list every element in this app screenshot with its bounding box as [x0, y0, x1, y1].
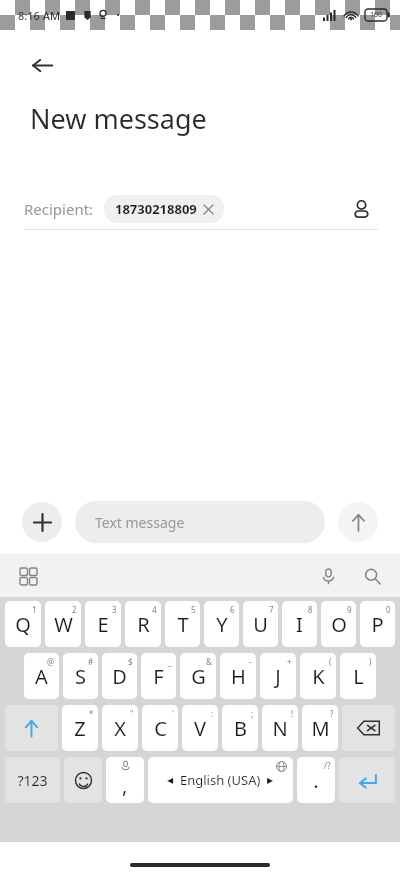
- staticText: ): [369, 656, 372, 667]
- staticText: 7: [269, 604, 274, 615]
- button[interactable]: Comma: [106, 757, 144, 803]
- staticText: I: [296, 611, 303, 638]
- button[interactable]: H: [220, 653, 256, 699]
- staticText: 3: [112, 604, 117, 615]
- staticText: W: [54, 611, 73, 638]
- staticText: (: [329, 656, 332, 667]
- button[interactable]: Send: [338, 502, 378, 542]
- staticText: 6: [230, 604, 235, 615]
- button[interactable]: T: [165, 601, 200, 647]
- staticText: X: [114, 715, 126, 742]
- staticText: Recipient:: [24, 199, 94, 219]
- staticText: Q: [15, 611, 31, 638]
- staticText: C: [154, 715, 167, 742]
- button[interactable]: Keyboard layouts: [12, 560, 44, 592]
- button[interactable]: Space: [148, 757, 293, 803]
- button[interactable]: J: [260, 653, 296, 699]
- button[interactable]: Z: [62, 705, 98, 751]
- staticText: ◀: [167, 776, 174, 785]
- button[interactable]: B: [222, 705, 258, 751]
- staticText: !: [291, 708, 294, 719]
- button[interactable]: Text message: [75, 501, 325, 543]
- staticText: Z: [74, 715, 86, 742]
- staticText: N: [272, 715, 288, 742]
- button[interactable]: I: [282, 601, 317, 647]
- button[interactable]: A: [24, 653, 59, 699]
- staticText: 8: [308, 604, 313, 615]
- button[interactable]: .: [297, 757, 335, 803]
- staticText: English (USA): [180, 771, 261, 789]
- button[interactable]: Back: [23, 46, 61, 84]
- staticText: 9: [347, 604, 352, 615]
- staticText: /?: [324, 760, 331, 771]
- button[interactable]: D: [102, 653, 137, 699]
- staticText: 4: [152, 604, 157, 615]
- staticText: F: [153, 663, 164, 690]
- staticText: P: [371, 611, 384, 638]
- button[interactable]: L: [340, 653, 376, 699]
- button[interactable]: Voice input: [312, 560, 344, 592]
- staticText: O: [331, 611, 347, 638]
- staticText: R: [137, 611, 150, 638]
- staticText: 1: [32, 604, 37, 615]
- button[interactable]: 18730218809: [104, 195, 224, 223]
- button[interactable]: C: [142, 705, 178, 751]
- button[interactable]: K: [300, 653, 336, 699]
- staticText: M: [311, 715, 330, 742]
- button[interactable]: X: [102, 705, 138, 751]
- button[interactable]: W: [45, 601, 81, 647]
- button[interactable]: Backspace: [342, 705, 395, 751]
- staticText: J: [275, 663, 281, 690]
- button[interactable]: Choose contact: [344, 192, 378, 226]
- staticText: ▶: [267, 776, 274, 785]
- button[interactable]: S: [63, 653, 98, 699]
- staticText: V: [194, 715, 206, 742]
- staticText: #: [88, 656, 94, 667]
- button[interactable]: V: [182, 705, 218, 751]
- button[interactable]: Y: [204, 601, 239, 647]
- button[interactable]: Add attachment: [22, 502, 62, 542]
- button[interactable]: E: [85, 601, 121, 647]
- staticText: 8:16 AM: [18, 8, 61, 23]
- button[interactable]: G: [180, 653, 216, 699]
- staticText: +: [287, 656, 292, 667]
- staticText: 18730218809: [115, 200, 197, 218]
- staticText: New message: [30, 100, 207, 137]
- staticText: *: [89, 708, 94, 719]
- staticText: ': [172, 708, 174, 719]
- staticText: B: [234, 715, 247, 742]
- staticText: -: [249, 656, 252, 667]
- button[interactable]: U: [243, 601, 278, 647]
- staticText: K: [312, 663, 325, 690]
- staticText: 100: [370, 10, 383, 20]
- button[interactable]: ?123: [5, 757, 60, 803]
- button[interactable]: M: [302, 705, 338, 751]
- staticText: ,: [122, 772, 128, 799]
- staticText: A: [35, 663, 48, 690]
- button[interactable]: Emoji: [64, 757, 102, 803]
- button[interactable]: Search: [356, 560, 388, 592]
- staticText: 5: [191, 604, 196, 615]
- staticText: E: [97, 611, 109, 638]
- staticText: ;: [251, 708, 254, 719]
- button[interactable]: R: [125, 601, 161, 647]
- staticText: L: [353, 663, 364, 690]
- staticText: ?: [330, 708, 334, 719]
- staticText: &: [206, 656, 212, 667]
- button[interactable]: F: [141, 653, 176, 699]
- button[interactable]: O: [321, 601, 356, 647]
- staticText: _: [168, 656, 172, 667]
- staticText: G: [191, 663, 206, 690]
- staticText: D: [112, 663, 127, 690]
- button[interactable]: N: [262, 705, 298, 751]
- staticText: :: [211, 708, 214, 719]
- button[interactable]: Shift: [5, 705, 58, 751]
- staticText: ": [130, 708, 134, 719]
- staticText: $: [128, 656, 133, 667]
- staticText: 2: [72, 604, 77, 615]
- staticText: ?123: [17, 771, 48, 790]
- button[interactable]: P: [360, 601, 395, 647]
- button[interactable]: Q: [5, 601, 41, 647]
- staticText: .: [313, 767, 319, 794]
- button[interactable]: Enter: [339, 757, 395, 803]
